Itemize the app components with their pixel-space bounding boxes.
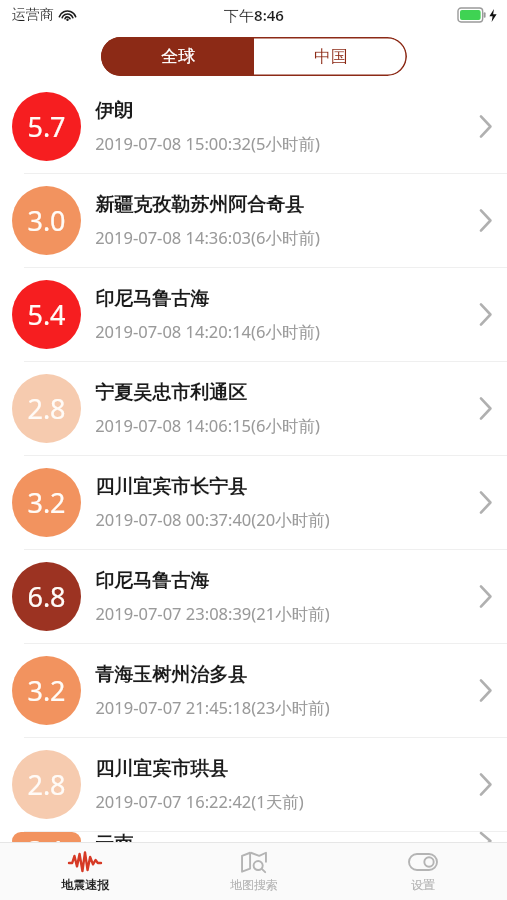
staticText: 印尼马鲁古海	[95, 287, 209, 311]
staticText: 2019-07-08 15:00:32(5小时前)	[95, 132, 320, 155]
staticText: 四川宜宾市珙县	[95, 757, 228, 781]
button[interactable]: 中国	[254, 37, 407, 76]
button[interactable]: 地图搜索	[169, 851, 338, 892]
staticText: 2019-07-07 16:22:42(1天前)	[95, 790, 304, 813]
staticText: 四川宜宾市长宁县	[95, 475, 247, 499]
button[interactable]: 2.8	[0, 362, 507, 455]
button[interactable]: 5.7	[0, 80, 507, 173]
staticText: 运营商	[12, 6, 54, 24]
staticText: 2.8	[27, 390, 66, 427]
staticText: 2019-07-08 14:36:03(6小时前)	[95, 226, 320, 249]
staticText: 5.7	[27, 108, 66, 145]
staticText: 5.4	[27, 296, 66, 333]
button[interactable]: 6.8	[0, 550, 507, 643]
staticText: 全球	[161, 46, 195, 67]
button[interactable]: 设置	[338, 851, 507, 892]
button[interactable]: 2.8	[0, 738, 507, 831]
staticText: 6.8	[27, 578, 66, 615]
button[interactable]: 3.0	[0, 174, 507, 267]
staticText: 2019-07-07 21:45:18(23小时前)	[95, 696, 330, 719]
button[interactable]: 地震速报	[0, 851, 169, 892]
staticText: 地图搜索	[230, 877, 278, 892]
staticText: 2019-07-08 00:37:40(20小时前)	[95, 508, 330, 531]
staticText: 设置	[411, 877, 435, 892]
button[interactable]: 全球	[101, 37, 254, 76]
staticText: 2019-07-07 23:08:39(21小时前)	[95, 602, 330, 625]
staticText: 2019-07-08 14:06:15(6小时前)	[95, 414, 320, 437]
staticText: 3.2	[27, 484, 66, 521]
staticText: 3.0	[27, 202, 66, 239]
button[interactable]: 3.2	[0, 644, 507, 737]
button[interactable]: 5.4	[0, 268, 507, 361]
button[interactable]: 3.2	[0, 456, 507, 549]
staticText: 地震速报	[61, 877, 109, 892]
button[interactable]: 3.1	[0, 832, 507, 850]
staticText: 2.8	[27, 766, 66, 803]
staticText: 印尼马鲁古海	[95, 569, 209, 593]
staticText: 3.1	[27, 832, 66, 850]
staticText: 3.2	[27, 672, 66, 709]
staticText: 中国	[314, 46, 348, 67]
staticText: 新疆克孜勒苏州阿合奇县	[95, 193, 304, 217]
staticText: 伊朗	[95, 99, 133, 123]
staticText: 2019-07-08 14:20:14(6小时前)	[95, 320, 320, 343]
staticText: 青海玉树州治多县	[95, 663, 247, 687]
staticText: 云南	[95, 832, 133, 850]
staticText: 宁夏吴忠市利通区	[95, 381, 247, 405]
staticText: 下午8:46	[224, 5, 284, 25]
